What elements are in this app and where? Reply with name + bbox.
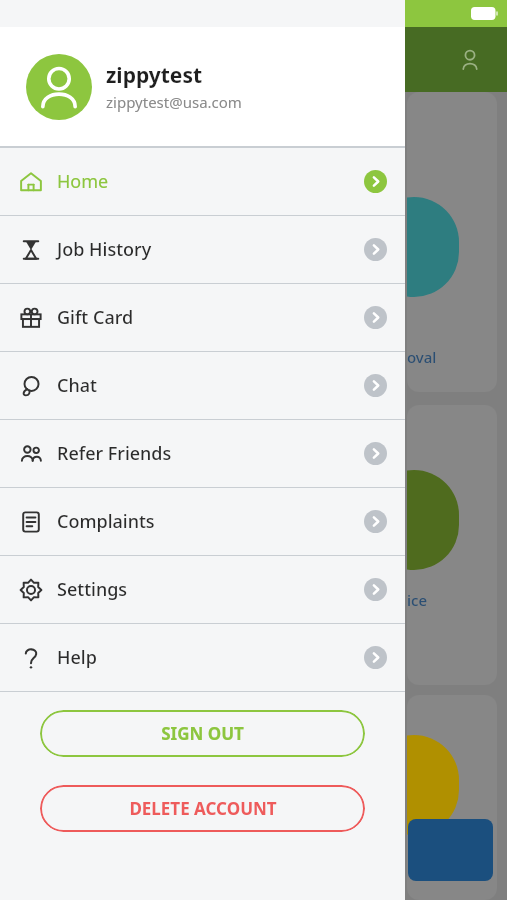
staticText: Home [57, 169, 109, 194]
staticText: ice [407, 590, 428, 610]
button[interactable]: DELETE ACCOUNT [40, 785, 365, 832]
staticText: SIGN OUT [161, 722, 244, 745]
button[interactable]: zippytest [0, 27, 405, 146]
staticText: DELETE ACCOUNT [129, 797, 277, 820]
staticText: zippytest@usa.com [106, 92, 242, 112]
staticText: Job History [57, 237, 152, 262]
button[interactable]: Job History [0, 216, 405, 283]
staticText: Refer Friends [57, 441, 172, 466]
other: Profile [458, 48, 482, 72]
staticText: zippytest [106, 61, 203, 90]
button[interactable]: Complaints [0, 488, 405, 555]
button[interactable]: Refer Friends [0, 420, 405, 487]
staticText: oval [407, 347, 437, 367]
button[interactable]: Chat [0, 352, 405, 419]
staticText: Gift Card [57, 305, 134, 330]
button[interactable]: SIGN OUT [40, 710, 365, 757]
staticText: Help [57, 645, 97, 670]
button[interactable]: Settings [0, 556, 405, 623]
button[interactable]: Help [0, 624, 405, 691]
staticText: Settings [57, 577, 128, 602]
button[interactable]: Gift Card [0, 284, 405, 351]
staticText: Complaints [57, 509, 155, 534]
button[interactable]: Home [0, 148, 405, 215]
staticText: Chat [57, 373, 97, 398]
